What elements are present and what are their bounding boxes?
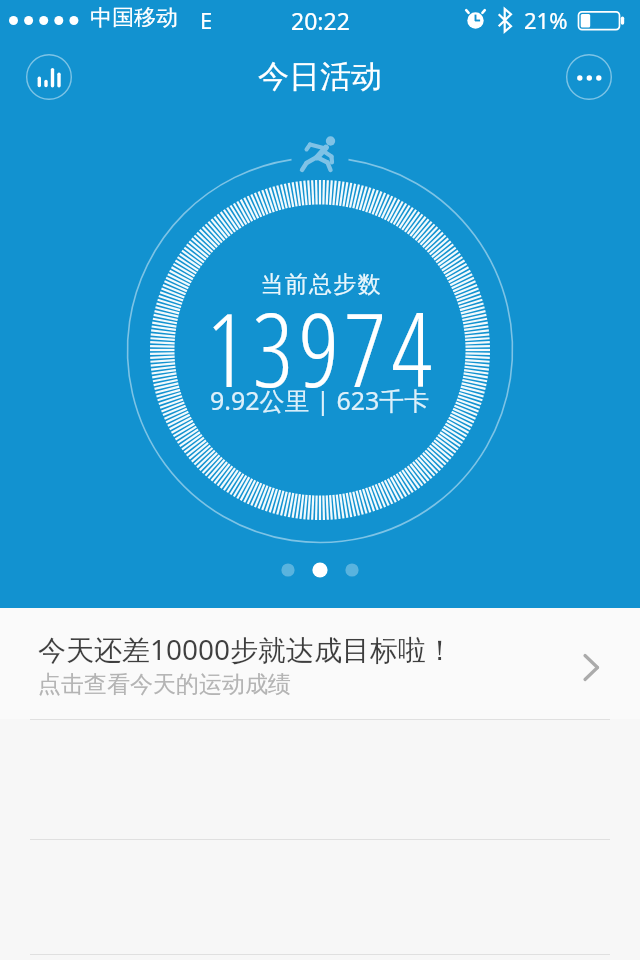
button[interactable] [566, 54, 612, 100]
staticText: 9.92公里 | 623千卡 [210, 383, 430, 417]
staticText: 21% [524, 5, 568, 35]
staticText: 今天还差10000步就达成目标啦！ [38, 630, 455, 668]
staticText: 今日活动 [258, 57, 382, 96]
button[interactable] [26, 54, 72, 100]
staticText: E [200, 5, 213, 35]
staticText: 20:22 [291, 5, 350, 36]
staticText: 中国移动 [90, 4, 178, 32]
button[interactable]: 今天还差10000步就达成目标啦！ [0, 608, 640, 719]
staticText: 当前总步数 [260, 270, 381, 299]
staticText: 13974 [206, 278, 438, 417]
staticText: 点击查看今天的运动成绩 [38, 670, 291, 699]
